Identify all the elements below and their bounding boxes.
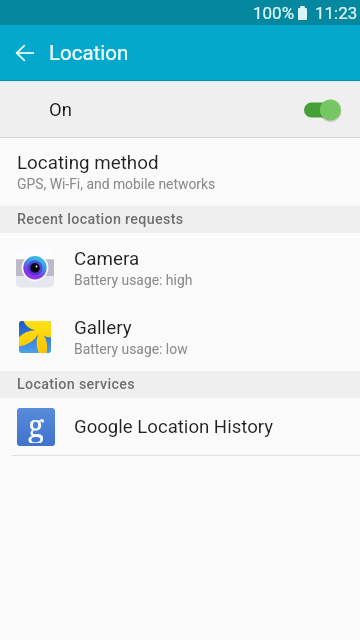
staticText: Recent location requests [17,211,184,228]
staticText: Location services [17,376,135,393]
staticText: Gallery [74,317,132,339]
staticText: GPS, Wi-Fi, and mobile networks [17,176,216,192]
button[interactable]: Camera [0,233,360,302]
button[interactable]: Locating method [0,138,360,206]
staticText: Locating method [17,152,159,174]
button[interactable]: Navigate up [2,30,47,75]
staticText: 11:23 [315,3,358,23]
staticText: Google Location History [74,416,274,438]
button[interactable]: Gallery [0,302,360,371]
button[interactable]: g [0,398,360,455]
staticText: g [28,408,45,443]
staticText: 100% [253,3,295,23]
staticText: Battery usage: low [74,341,188,357]
staticText: Camera [74,248,140,270]
staticText: On [49,99,72,121]
button[interactable]: On [0,83,360,137]
staticText: Location [49,41,129,65]
staticText: Battery usage: high [74,272,193,288]
